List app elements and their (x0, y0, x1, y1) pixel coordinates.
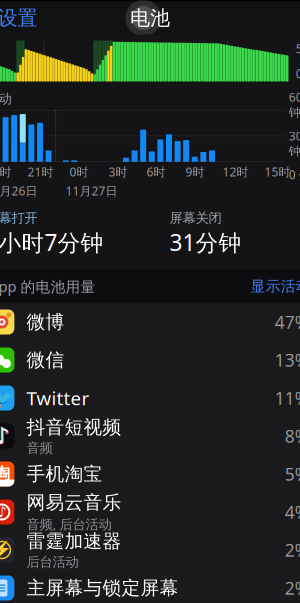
staticText: 淘 (0, 463, 10, 483)
staticText: 50% (296, 40, 300, 56)
button[interactable]: ⚡ (0, 531, 300, 569)
staticText: ♪ (0, 424, 10, 449)
button[interactable]: 微博 (0, 303, 300, 341)
staticText: 15时 (264, 164, 290, 180)
staticText: 12时 (222, 164, 248, 180)
staticText: 后台活动 (26, 554, 78, 570)
staticText: 显示活动 (251, 277, 300, 295)
staticText: 0时 (69, 164, 88, 180)
button[interactable]: 淘 (0, 455, 300, 493)
staticText: 音频 (26, 440, 52, 456)
staticText: 5% (285, 462, 300, 485)
staticText: 11月27日 (65, 183, 117, 199)
button[interactable]: ♪ (0, 417, 300, 455)
staticText: 30 分钟 (289, 128, 300, 159)
staticText: 电池 (130, 6, 170, 30)
staticText: 8% (285, 424, 300, 447)
staticText: ⚡ (0, 541, 12, 559)
staticText: 抖音短视频 (26, 416, 121, 439)
staticText: 主屏幕与锁定屏幕 (26, 576, 178, 599)
staticText: ♪ (0, 423, 9, 449)
staticText: ♪ (0, 504, 6, 520)
staticText: 🐦 (0, 387, 14, 409)
button[interactable]: 主屏幕与锁定屏幕 (0, 569, 300, 603)
staticText: 47% (275, 310, 300, 333)
staticText: 屏幕关闭 (169, 210, 221, 226)
staticText: 21时 (27, 164, 53, 180)
staticText: 31分钟 (169, 227, 241, 257)
staticText: 11月26日 (0, 183, 37, 199)
button[interactable]: 微信 (0, 341, 300, 379)
button[interactable]: 显示活动 (251, 274, 300, 298)
staticText: ♪ (0, 423, 8, 448)
staticText: 2% (285, 576, 300, 599)
staticText: 设置 (0, 6, 37, 30)
button[interactable]: ‹ (0, 0, 37, 42)
staticText: 0 分钟 (289, 167, 300, 182)
staticText: 微信 (26, 348, 64, 371)
staticText: Twitter (26, 386, 89, 410)
staticText: 13% (275, 348, 300, 371)
staticText: 2% (285, 538, 300, 561)
staticText: 11% (275, 386, 300, 409)
staticText: 音频, 后台活动 (26, 515, 111, 533)
staticText: 网易云音乐 (26, 491, 121, 514)
staticText: 4% (285, 500, 300, 523)
staticText: 18时 (0, 164, 11, 180)
staticText: 9小时7分钟 (0, 227, 103, 257)
staticText: 手机淘宝 (26, 462, 102, 485)
staticText: 屏幕打开 (0, 210, 37, 226)
button[interactable]: 🐦 (0, 379, 300, 417)
staticText: 9时 (185, 164, 204, 180)
staticText: 3时 (108, 164, 127, 180)
staticText: 0% (296, 66, 300, 81)
staticText: 活动 (0, 90, 11, 107)
staticText: 60 分钟 (289, 89, 300, 120)
staticText: App 的电池用量 (0, 276, 95, 296)
staticText: 微博 (26, 310, 64, 333)
button[interactable]: ♪ (0, 493, 300, 531)
staticText: 雷霆加速器 (26, 530, 121, 553)
staticText: 6时 (146, 164, 165, 180)
